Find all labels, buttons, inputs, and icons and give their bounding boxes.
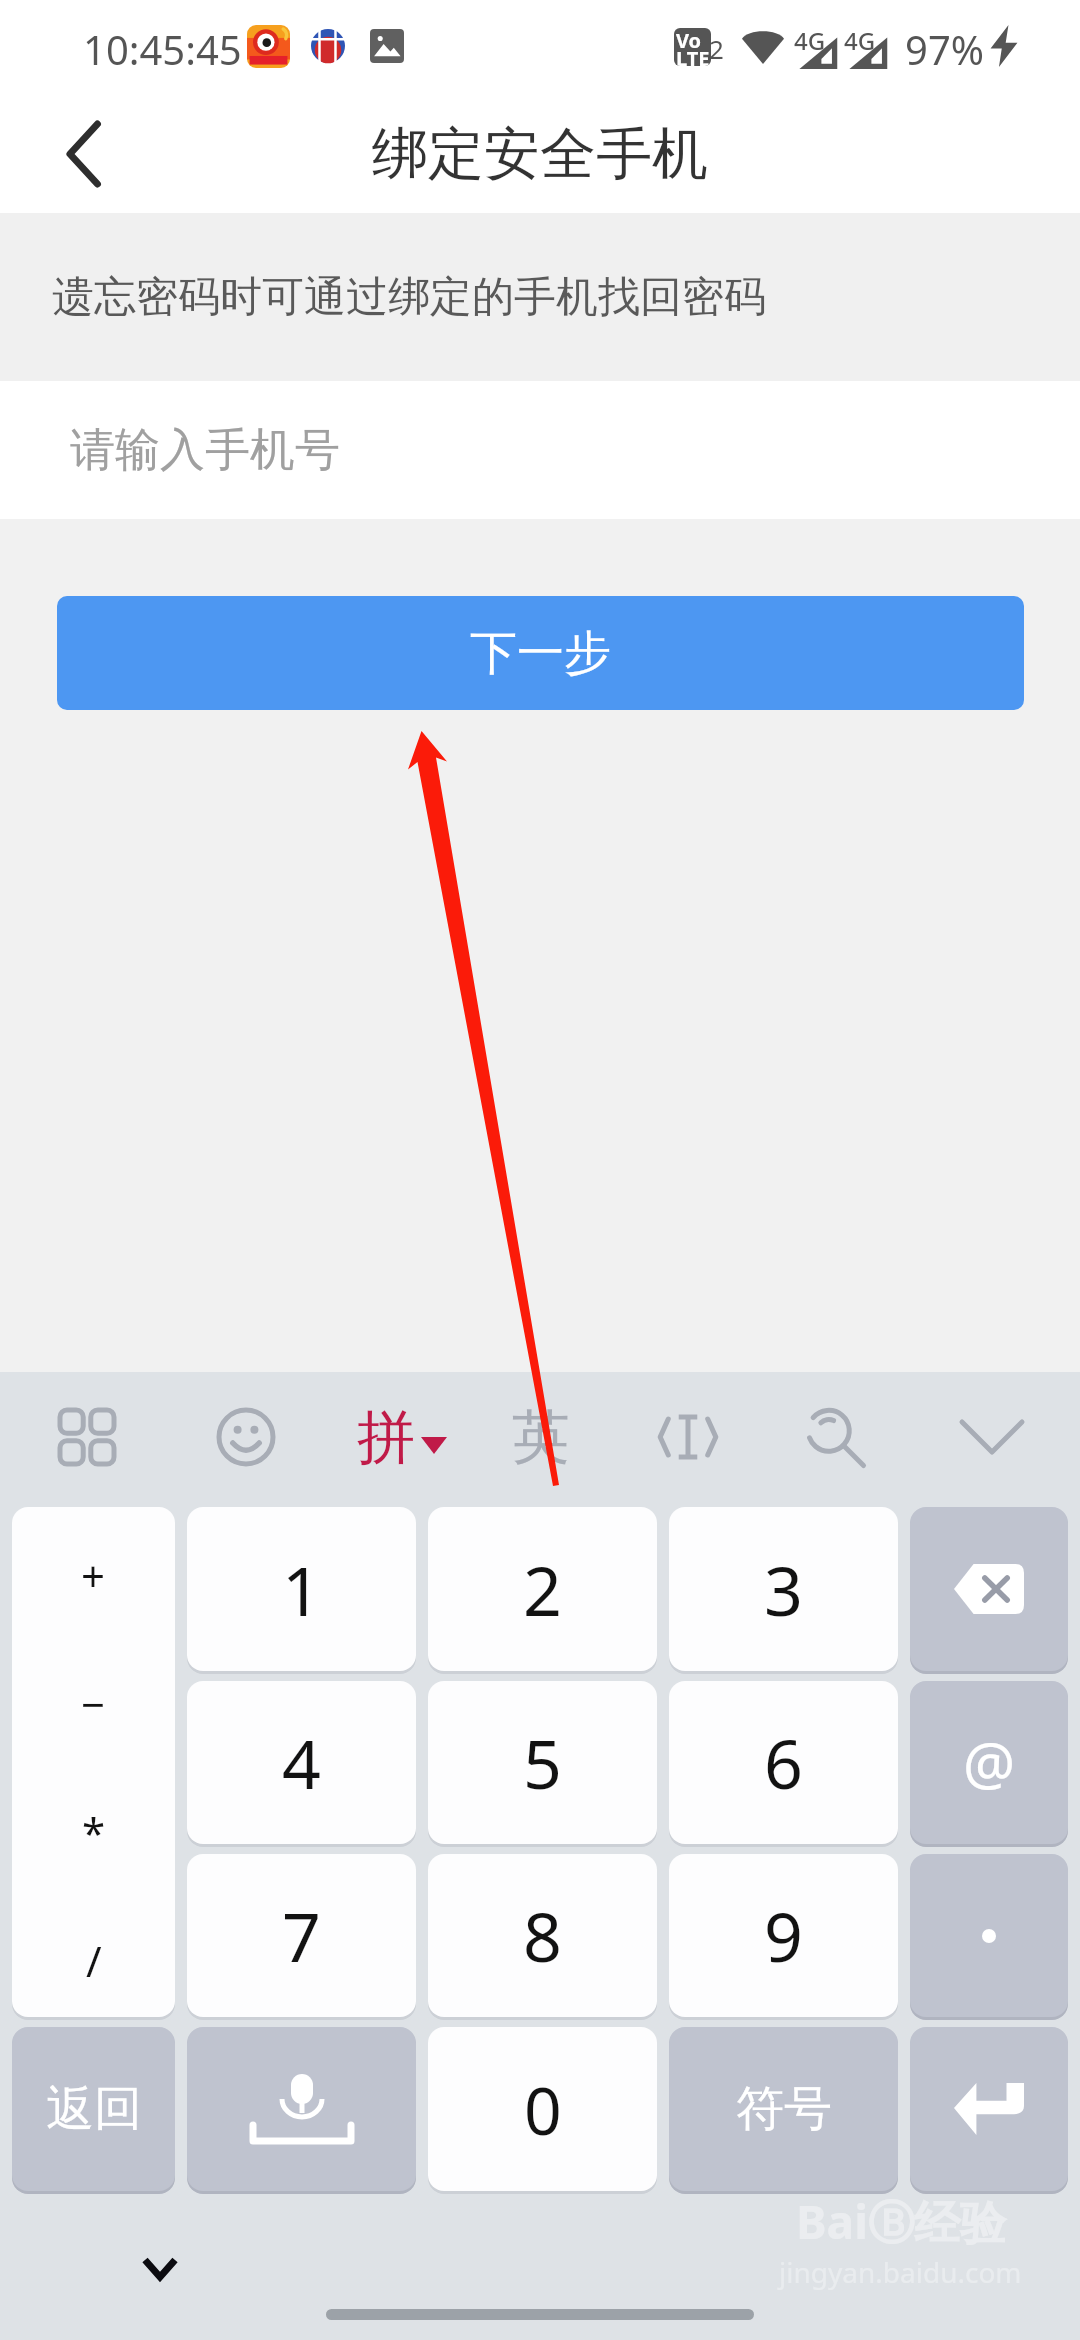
button[interactable]: 1: [187, 1507, 416, 1671]
staticText: 拼: [357, 1401, 415, 1474]
button[interactable]: @: [910, 1681, 1068, 1844]
staticText: +: [81, 1547, 106, 1604]
button[interactable]: 6: [669, 1681, 898, 1844]
button[interactable]: 下一步: [57, 596, 1024, 710]
staticText: 2: [709, 31, 724, 66]
button[interactable]: Move cursor: [618, 1372, 758, 1502]
staticText: 97%: [905, 22, 984, 76]
button[interactable]: Pinyin mode: [332, 1372, 472, 1502]
button[interactable]: Backspace: [910, 1507, 1068, 1671]
staticText: 3: [764, 1543, 803, 1636]
button[interactable]: Hide keyboard: [120, 2228, 200, 2308]
staticText: /: [86, 1932, 102, 1989]
staticText: 请输入手机号: [70, 422, 340, 479]
staticText: 9: [764, 1889, 803, 1982]
staticText: 8: [523, 1889, 562, 1982]
button[interactable]: 符号: [669, 2027, 898, 2191]
staticText: 2: [523, 1543, 562, 1636]
button[interactable]: 0: [428, 2027, 657, 2191]
button[interactable]: Search: [765, 1372, 905, 1502]
button[interactable]: +: [12, 1507, 175, 2017]
button[interactable]: 7: [187, 1854, 416, 2017]
button[interactable]: 9: [669, 1854, 898, 2017]
staticText: 10:45:45: [83, 22, 242, 76]
staticText: Vo: [676, 28, 702, 54]
staticText: 返回: [46, 2079, 142, 2139]
staticText: 符号: [736, 2079, 832, 2139]
button[interactable]: 请输入手机号: [0, 381, 1080, 519]
staticText: jingyan.baidu.com: [779, 2253, 1022, 2291]
button[interactable]: English mode: [471, 1372, 611, 1502]
button[interactable]: Collapse keyboard: [922, 1372, 1062, 1502]
staticText: 7: [282, 1889, 321, 1982]
button[interactable]: 3: [669, 1507, 898, 1671]
button[interactable]: 返回: [12, 2027, 175, 2191]
staticText: 0: [524, 2064, 562, 2154]
staticText: 遗忘密码时可通过绑定的手机找回密码: [52, 271, 766, 324]
button[interactable]: Period: [910, 1854, 1068, 2017]
staticText: −: [81, 1675, 106, 1732]
staticText: 绑定安全手机: [372, 119, 708, 190]
staticText: BaiⒷ经验: [796, 2190, 1006, 2253]
button[interactable]: 5: [428, 1681, 657, 1844]
button[interactable]: 4: [187, 1681, 416, 1844]
button[interactable]: Back: [36, 106, 132, 202]
staticText: 6: [764, 1716, 803, 1809]
button[interactable]: Keyboard layout: [17, 1372, 157, 1502]
button[interactable]: 2: [428, 1507, 657, 1671]
staticText: @: [963, 1723, 1016, 1802]
staticText: LTE: [676, 45, 710, 66]
staticText: 4G: [794, 24, 826, 57]
staticText: 下一步: [470, 624, 611, 683]
button[interactable]: Emoji: [176, 1372, 316, 1502]
staticText: 4: [282, 1716, 321, 1809]
staticText: 5: [523, 1716, 562, 1809]
button[interactable]: Enter: [910, 2027, 1068, 2191]
staticText: *: [82, 1804, 106, 1861]
button[interactable]: Voice input: [187, 2027, 416, 2191]
staticText: 4G: [844, 24, 876, 57]
staticText: 英: [512, 1401, 570, 1474]
staticText: 1: [282, 1543, 321, 1636]
button[interactable]: 8: [428, 1854, 657, 2017]
